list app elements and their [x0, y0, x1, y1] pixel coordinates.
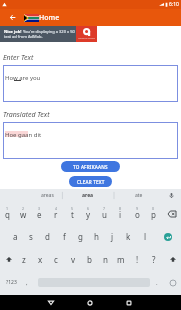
staticText: You're displaying a 320 x 50 — [23, 29, 75, 34]
staticText: e — [37, 209, 42, 220]
staticText: area — [82, 192, 94, 199]
button[interactable]: x — [32, 248, 48, 271]
staticText: i — [119, 209, 122, 220]
button[interactable]: c — [48, 248, 64, 271]
staticText: u — [102, 209, 107, 220]
button[interactable]: 3 — [31, 202, 47, 225]
button[interactable]: g — [72, 225, 88, 248]
button[interactable]: 6 — [80, 202, 96, 225]
staticText: w — [20, 209, 27, 220]
button[interactable]: ate — [117, 189, 161, 202]
button[interactable]: ? — [146, 248, 162, 271]
staticText: ate — [135, 192, 143, 199]
staticText: How are you — [5, 74, 41, 82]
staticText: AdMob by Google — [78, 37, 95, 40]
staticText: ?123 — [6, 279, 17, 286]
button[interactable]: 9 — [129, 202, 145, 225]
staticText: k — [126, 231, 131, 242]
staticText: 6 — [87, 206, 90, 211]
staticText: n — [103, 254, 108, 265]
staticText: d — [45, 231, 50, 242]
button[interactable]: a — [7, 225, 23, 248]
button[interactable]: z — [16, 248, 32, 271]
button[interactable]: areas — [25, 189, 69, 202]
staticText: g — [78, 231, 83, 242]
button[interactable]: b — [81, 248, 97, 271]
button[interactable]: Home — [80, 295, 100, 310]
staticText: y — [86, 209, 91, 220]
button[interactable]: l — [137, 225, 153, 248]
staticText: m — [117, 254, 125, 265]
button[interactable]: Shift — [164, 248, 181, 271]
button[interactable]: j — [104, 225, 120, 248]
staticText: l — [144, 231, 147, 242]
staticText: TO AFRIKAANS — [73, 164, 108, 170]
button[interactable]: 8 — [112, 202, 128, 225]
button[interactable]: Emoji — [164, 271, 181, 294]
button[interactable]: v — [65, 248, 81, 271]
button[interactable]: h — [88, 225, 104, 248]
button[interactable]: n — [97, 248, 113, 271]
staticText: 6:10 — [169, 1, 179, 8]
button[interactable]: 4 — [48, 202, 64, 225]
staticText: v — [71, 254, 76, 265]
button[interactable]: CLEAR TEXT — [69, 176, 112, 187]
staticText: 1 — [6, 206, 9, 211]
staticText: 2 — [22, 206, 25, 211]
staticText: . — [156, 279, 158, 287]
staticText: s — [29, 231, 33, 242]
staticText: f — [63, 231, 66, 242]
staticText: b — [87, 254, 92, 265]
staticText: Hoe gaan dit — [5, 131, 42, 139]
staticText: test ad from AdMob. — [4, 34, 43, 39]
button[interactable]: 2 — [15, 202, 31, 225]
button[interactable]: d — [39, 225, 55, 248]
button[interactable]: Back — [0, 9, 24, 26]
button[interactable]: 0 — [145, 202, 161, 225]
staticText: c — [54, 254, 58, 265]
button[interactable]: Backspace — [163, 202, 181, 225]
button[interactable]: , — [20, 271, 34, 294]
staticText: ? — [152, 254, 156, 265]
staticText: h — [94, 231, 99, 242]
button[interactable]: ?123 — [0, 271, 22, 294]
button[interactable]: 7 — [96, 202, 112, 225]
button[interactable]: f — [56, 225, 72, 248]
staticText: r — [54, 209, 58, 220]
button[interactable]: Back — [41, 295, 61, 310]
button[interactable]: area — [66, 189, 110, 202]
staticText: x — [38, 254, 43, 265]
staticText: q — [5, 209, 10, 220]
staticText: z — [22, 254, 26, 265]
staticText: 4 — [55, 206, 58, 211]
staticText: p — [151, 209, 156, 220]
button[interactable]: Recents — [119, 295, 139, 310]
button[interactable]: Shift — [0, 248, 17, 271]
staticText: t — [71, 209, 74, 220]
staticText: ! — [136, 254, 139, 265]
staticText: Translated Text — [3, 110, 50, 120]
staticText: o — [135, 209, 140, 220]
staticText: CLEAR TEXT — [77, 179, 105, 185]
staticText: 3 — [38, 206, 41, 211]
button[interactable]: TO AFRIKAANS — [61, 161, 120, 172]
staticText: areas — [41, 192, 54, 199]
staticText: 8 — [119, 206, 122, 211]
staticText: Enter Text — [3, 53, 34, 63]
button[interactable]: s — [23, 225, 39, 248]
staticText: , — [26, 279, 28, 287]
staticText: Nice job! — [4, 29, 23, 34]
staticText: 7 — [103, 206, 106, 211]
button[interactable]: ! — [129, 248, 145, 271]
button[interactable]: Voice input — [161, 189, 181, 202]
button[interactable]: k — [120, 225, 136, 248]
button[interactable]: Enter — [159, 225, 177, 248]
button[interactable]: 5 — [64, 202, 80, 225]
staticText: 9 — [136, 206, 139, 211]
staticText: j — [111, 231, 114, 242]
staticText: 5 — [71, 206, 74, 211]
button[interactable]: m — [113, 248, 129, 271]
button[interactable]: 1 — [0, 202, 15, 225]
